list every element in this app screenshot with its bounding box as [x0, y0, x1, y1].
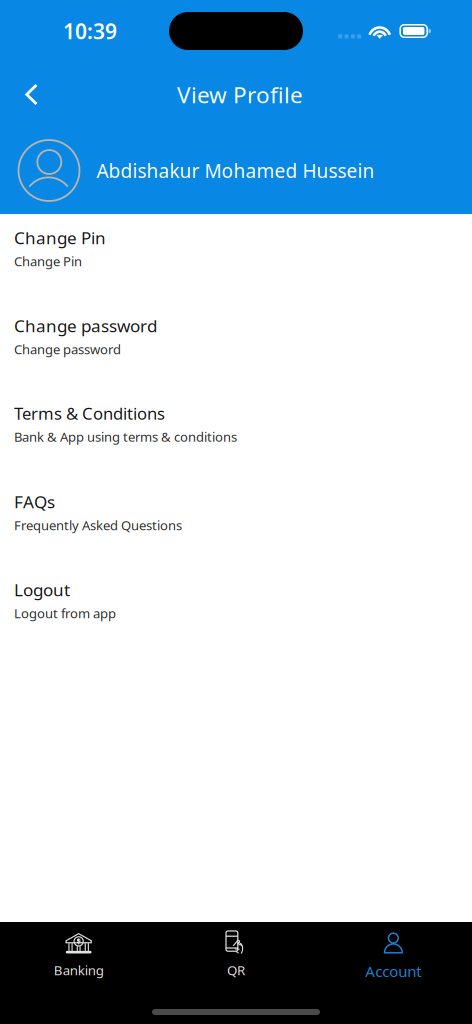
- button[interactable]: QR: [157, 922, 315, 1001]
- staticText: 10:39: [63, 17, 117, 45]
- staticText: Change password: [14, 314, 157, 337]
- button[interactable]: Change password: [0, 302, 472, 390]
- staticText: Change Pin: [14, 226, 106, 249]
- button[interactable]: Terms & Conditions: [0, 390, 472, 478]
- staticText: Account: [365, 961, 421, 981]
- staticText: Logout from app: [14, 604, 116, 622]
- button[interactable]: Back: [8, 72, 54, 116]
- staticText: FAQs: [14, 490, 55, 513]
- button[interactable]: Logout: [0, 566, 472, 654]
- staticText: Change Pin: [14, 252, 82, 270]
- button[interactable]: Account: [315, 922, 472, 1001]
- button[interactable]: Banking: [0, 922, 157, 1001]
- staticText: View Profile: [177, 79, 303, 110]
- staticText: QR: [227, 961, 245, 979]
- staticText: Bank & App using terms & conditions: [14, 428, 237, 445]
- staticText: Frequently Asked Questions: [14, 516, 182, 534]
- staticText: Banking: [54, 961, 104, 979]
- button[interactable]: FAQs: [0, 478, 472, 566]
- staticText: Abdishakur Mohamed Hussein: [96, 157, 374, 183]
- staticText: Logout: [14, 578, 70, 601]
- staticText: Terms & Conditions: [14, 402, 165, 425]
- staticText: Change password: [14, 340, 121, 358]
- button[interactable]: Change Pin: [0, 214, 472, 302]
